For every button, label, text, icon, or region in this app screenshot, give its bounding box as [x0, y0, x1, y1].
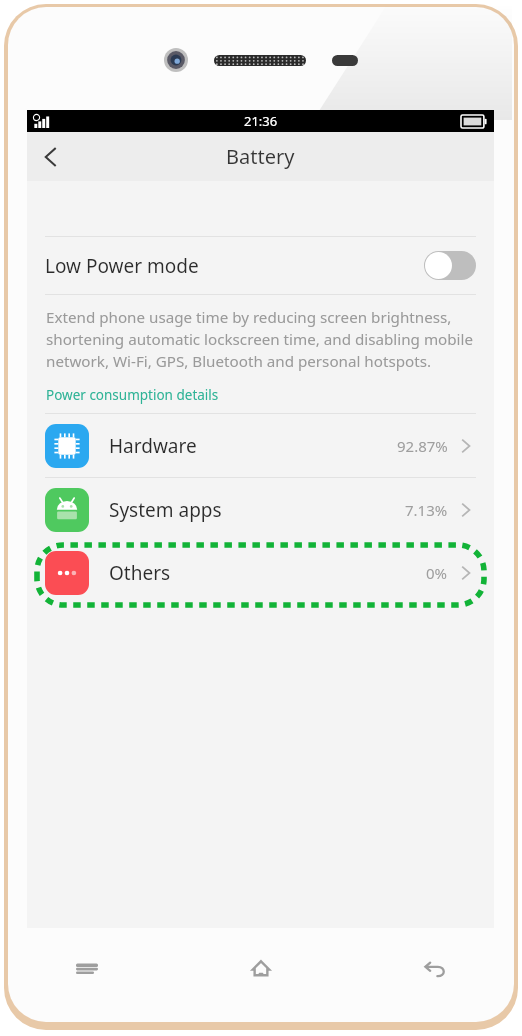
- staticText: 0%: [426, 563, 448, 583]
- staticText: Low Power mode: [45, 253, 199, 279]
- staticText: System apps: [109, 497, 222, 523]
- staticText: Others: [109, 560, 171, 586]
- button[interactable]: Low Power mode toggle: [424, 251, 476, 280]
- button[interactable]: Back: [348, 940, 522, 996]
- button[interactable]: System apps: [27, 478, 494, 541]
- button[interactable]: Others: [27, 541, 494, 604]
- staticText: Extend phone usage time by reducing scre…: [46, 307, 474, 372]
- button[interactable]: Home: [174, 940, 348, 996]
- button[interactable]: Low Power mode: [27, 237, 494, 294]
- button[interactable]: Hardware: [27, 414, 494, 477]
- staticText: 92.87%: [397, 436, 448, 456]
- staticText: Power consumption details: [46, 386, 219, 404]
- button[interactable]: Back: [27, 133, 75, 181]
- staticText: Battery: [226, 143, 295, 170]
- staticText: Hardware: [109, 433, 197, 459]
- staticText: 21:36: [244, 112, 278, 130]
- staticText: 7.13%: [405, 500, 448, 520]
- button[interactable]: Recent apps: [0, 940, 174, 996]
